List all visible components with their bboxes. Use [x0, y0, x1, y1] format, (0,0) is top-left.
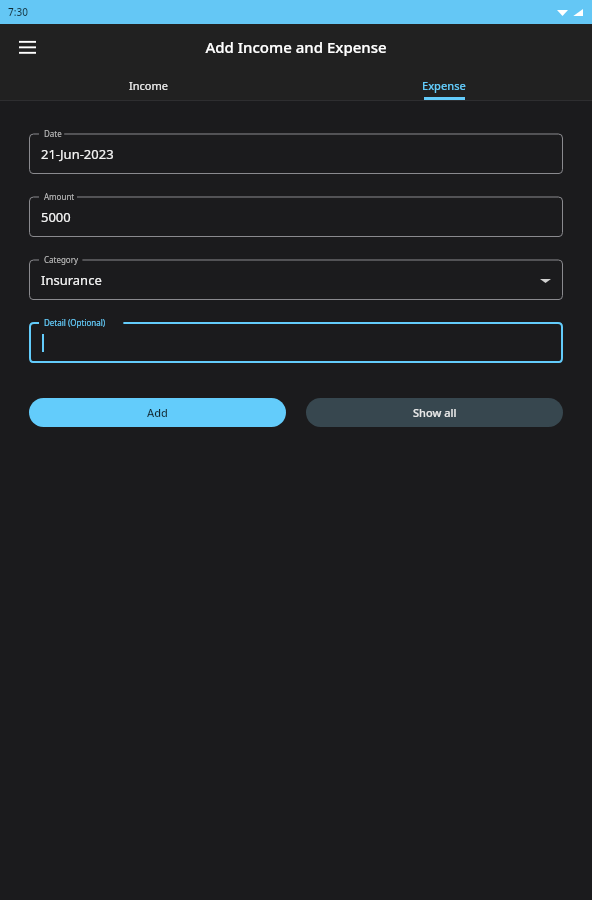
- staticText: Show all: [413, 405, 457, 420]
- button[interactable]: Amount: [29, 190, 563, 237]
- button[interactable]: Open navigation menu: [11, 31, 43, 63]
- button[interactable]: Date: [29, 127, 563, 174]
- button[interactable]: Show all: [306, 398, 563, 427]
- staticText: Add Income and Expense: [205, 37, 387, 57]
- staticText: 7:30: [8, 5, 28, 19]
- staticText: Date: [44, 128, 62, 139]
- button[interactable]: Income: [0, 70, 296, 100]
- button[interactable]: Expense: [296, 70, 592, 100]
- button[interactable]: Detail (Optional): [29, 316, 563, 363]
- staticText: Add: [147, 405, 168, 420]
- staticText: Insurance: [41, 271, 102, 289]
- staticText: 5000: [41, 208, 71, 226]
- button[interactable]: Add: [29, 398, 286, 427]
- staticText: Income: [129, 78, 168, 93]
- staticText: Expense: [422, 78, 466, 93]
- staticText: Amount: [44, 191, 75, 202]
- staticText: Detail (Optional): [44, 317, 106, 328]
- staticText: 21-Jun-2023: [41, 145, 114, 163]
- button[interactable]: Category: [29, 253, 563, 300]
- staticText: Category: [44, 254, 79, 265]
